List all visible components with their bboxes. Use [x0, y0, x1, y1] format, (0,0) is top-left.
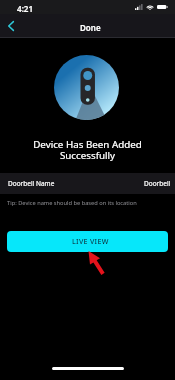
- button[interactable]: Doorbell Name: [0, 173, 175, 194]
- staticText: Tip: Device name should be based on its …: [7, 199, 137, 207]
- staticText: Successfully: [0, 149, 175, 162]
- staticText: 4:21: [17, 3, 34, 14]
- staticText: Doorbell Name: [8, 179, 55, 188]
- staticText: Done: [80, 22, 101, 33]
- button[interactable]: LIVE VIEW: [7, 231, 168, 252]
- button[interactable]: Back: [0, 15, 22, 37]
- staticText: Device Has Been Added: [0, 138, 175, 151]
- staticText: Doorbell: [144, 179, 171, 188]
- staticText: LIVE VIEW: [72, 236, 109, 246]
